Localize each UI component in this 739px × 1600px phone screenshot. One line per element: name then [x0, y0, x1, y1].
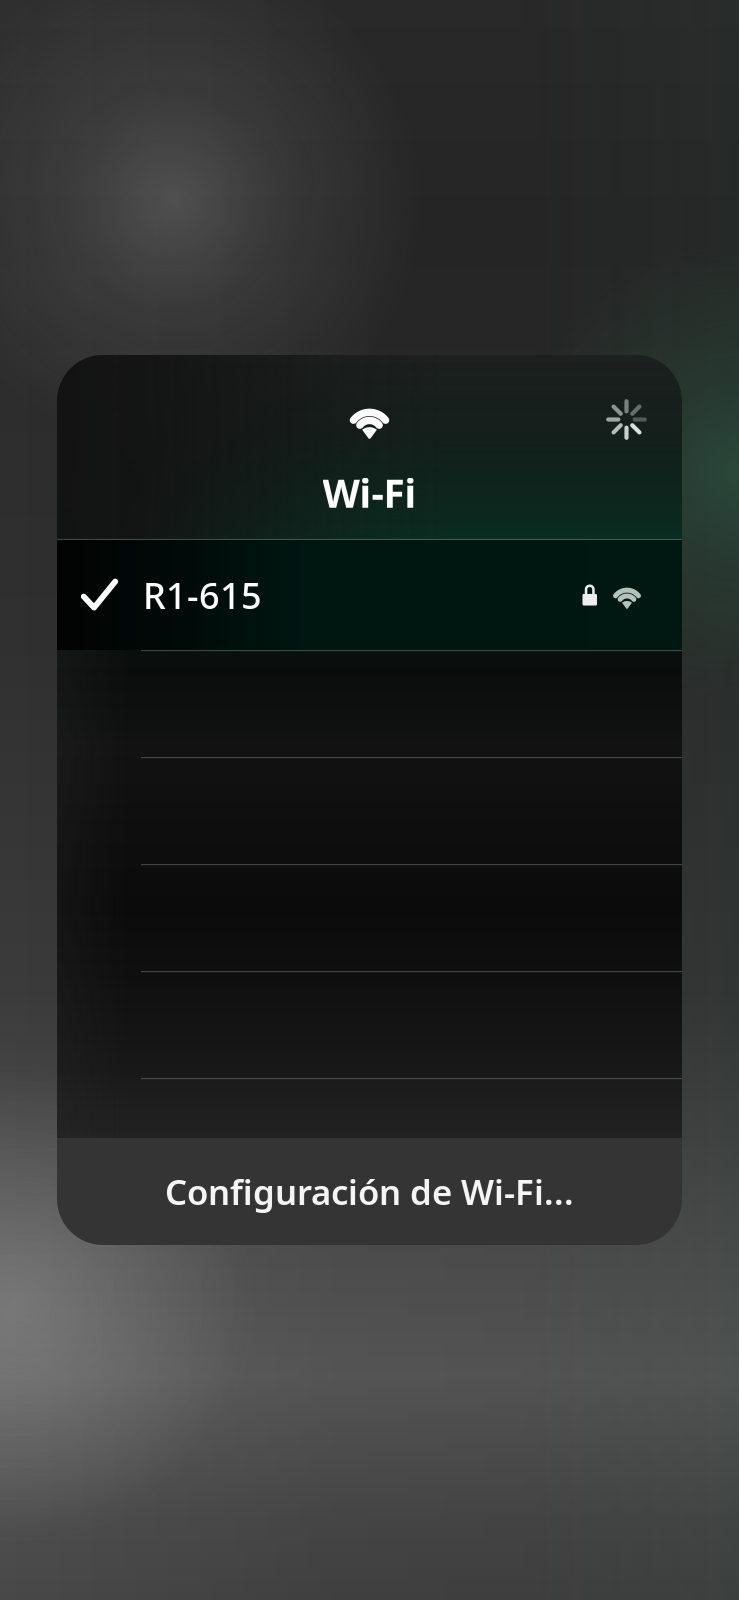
staticText: Configuración de Wi-Fi...	[165, 1168, 574, 1214]
button[interactable]: Configuración de Wi-Fi...	[57, 1138, 682, 1245]
staticText: R1-615	[143, 571, 262, 619]
button[interactable]: R1-615	[57, 540, 682, 650]
staticText: Wi-Fi	[322, 467, 416, 518]
button[interactable]: Buscando redes	[607, 400, 646, 439]
